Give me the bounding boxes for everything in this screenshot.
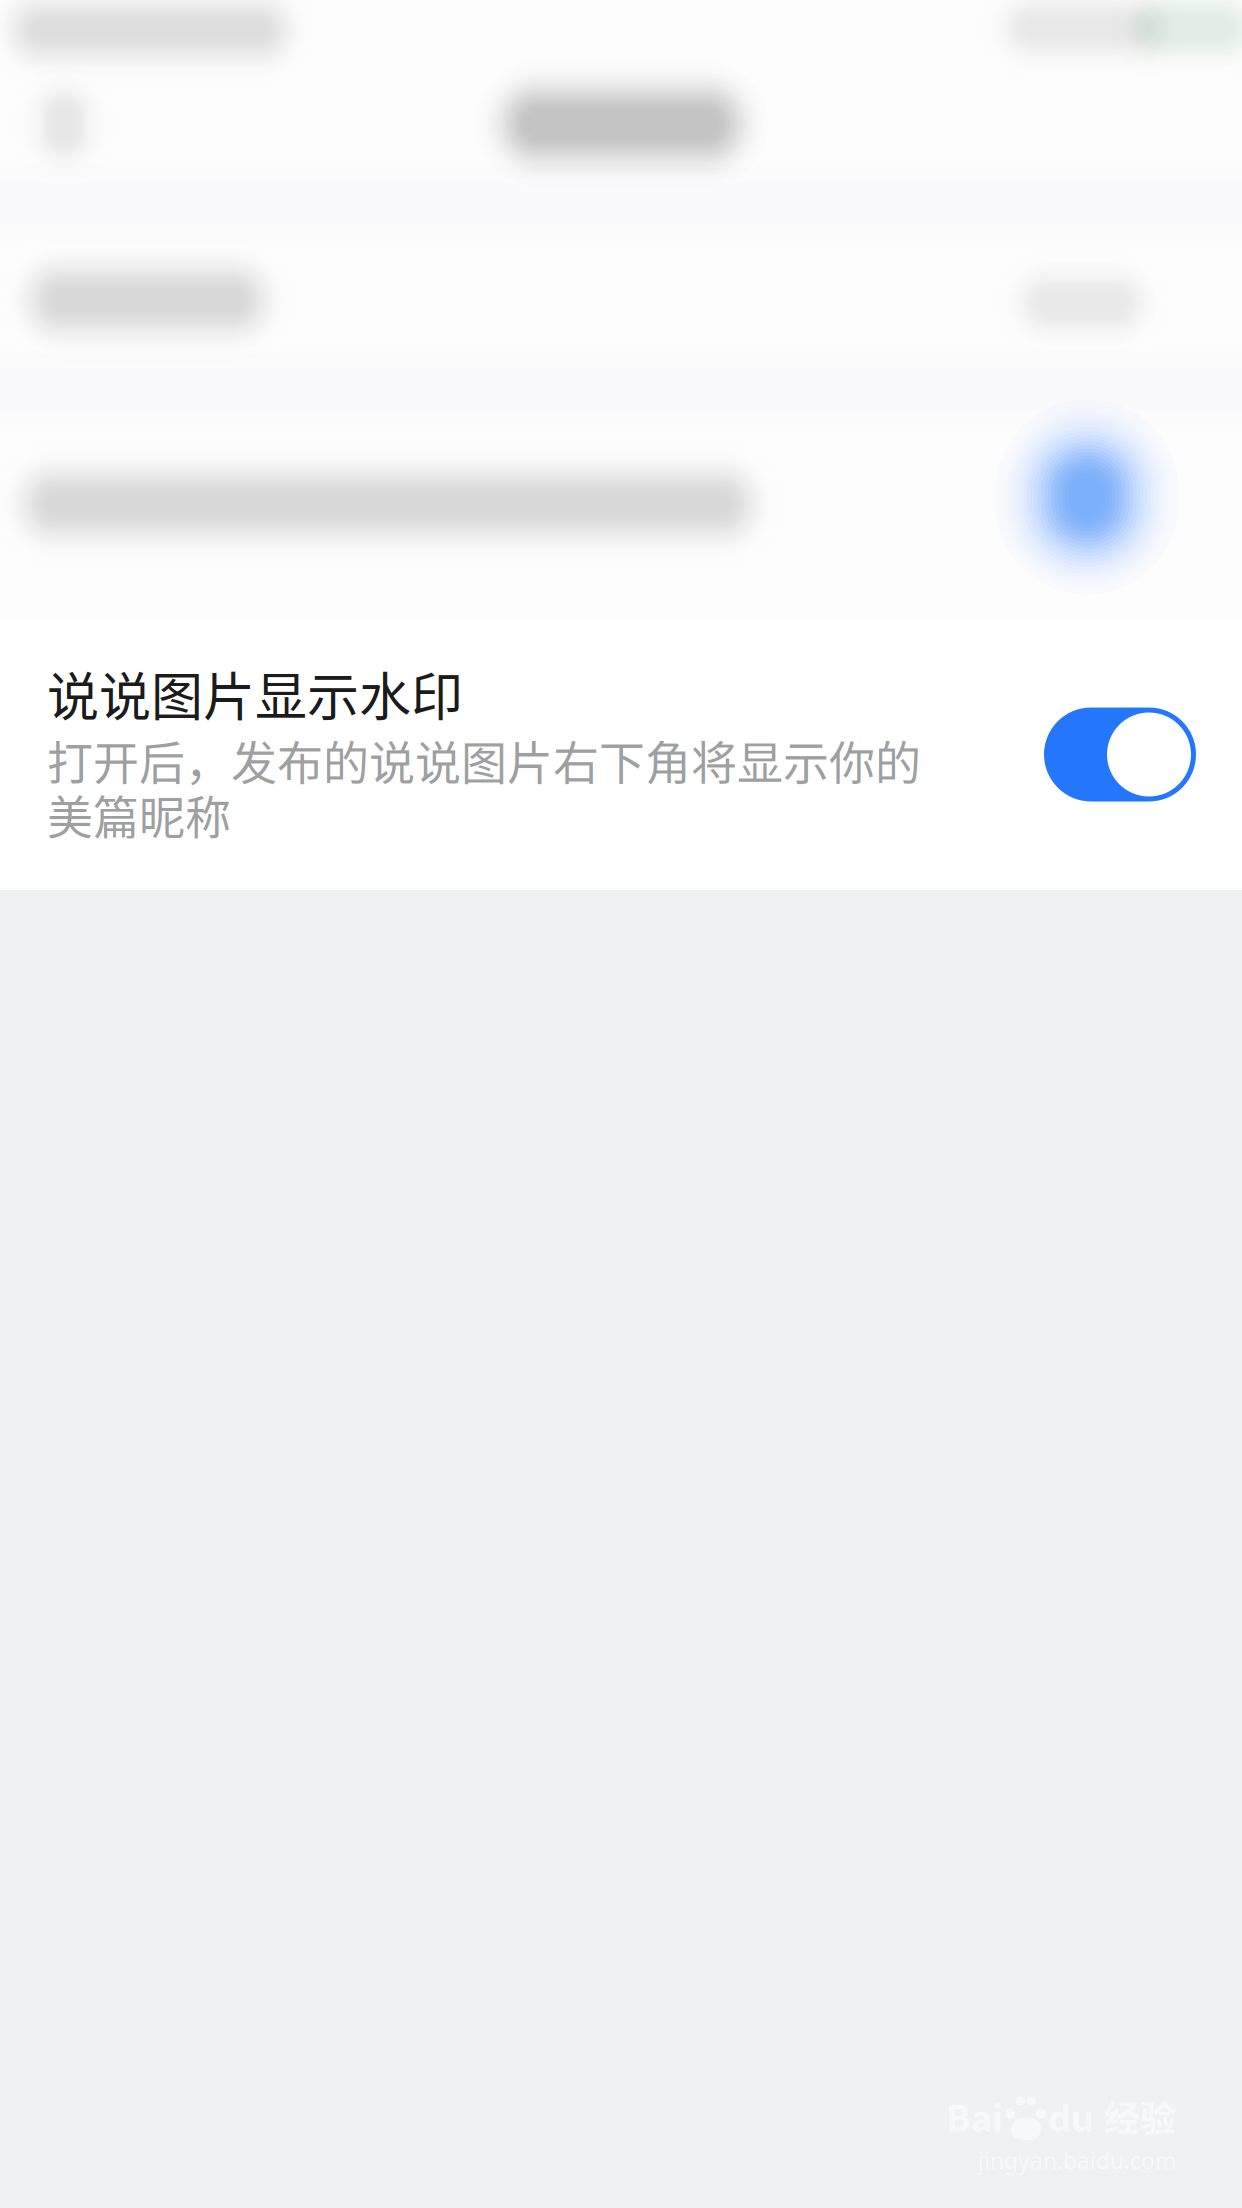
- staticText: 说说图片显示水印: [47, 656, 463, 731]
- staticText: 打开后，发布的说说图片右下角将显示你的美篇昵称: [47, 732, 921, 841]
- button[interactable]: 说说图片显示水印: [0, 618, 1242, 890]
- staticText: 经验: [1104, 2090, 1176, 2142]
